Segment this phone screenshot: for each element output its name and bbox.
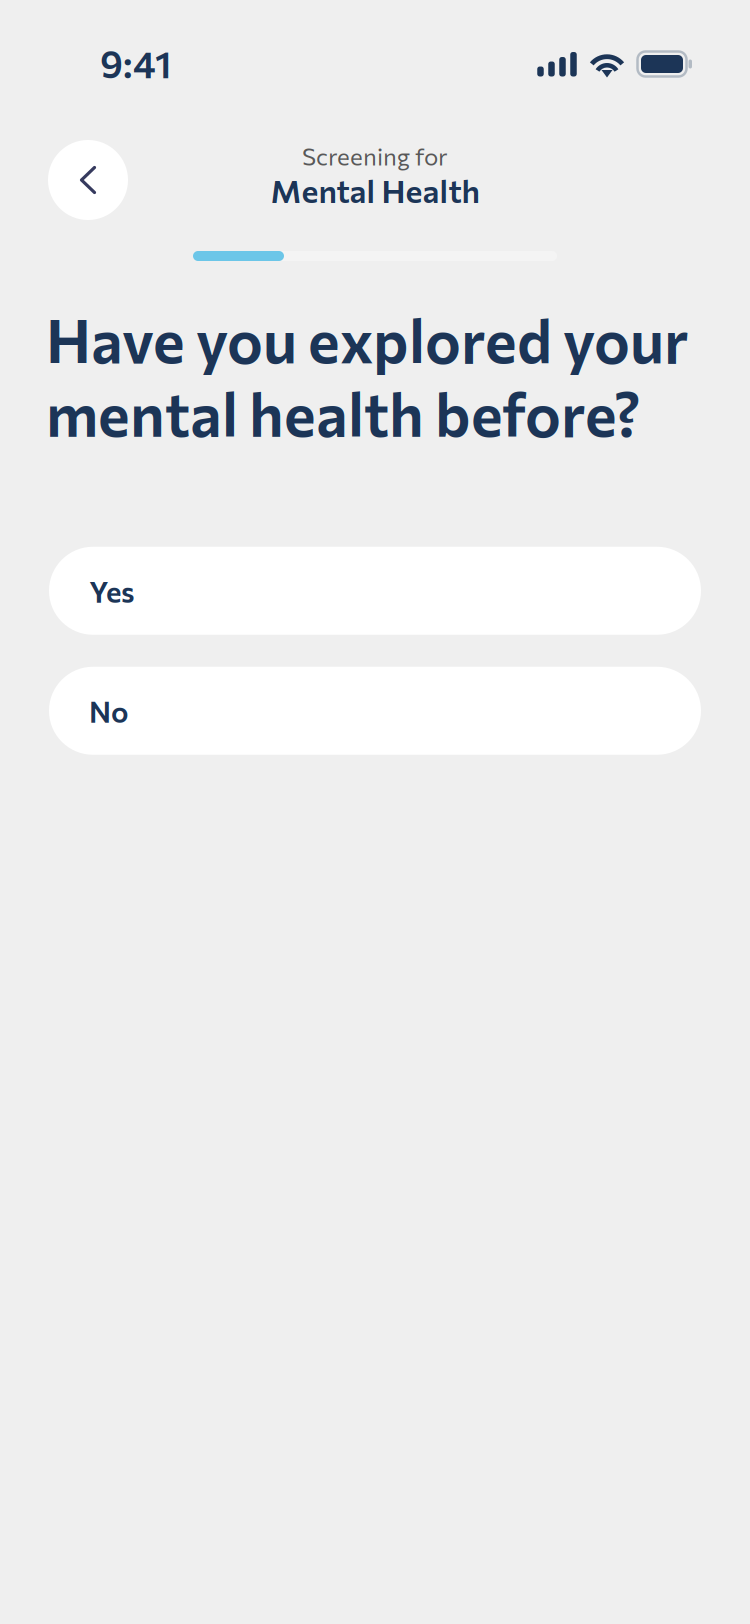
staticText: Mental Health <box>270 170 479 209</box>
staticText: Screening for <box>302 141 448 170</box>
staticText: 9:41 <box>100 40 172 86</box>
staticText: No <box>89 693 129 729</box>
button[interactable]: Yes <box>49 547 701 635</box>
staticText: Yes <box>89 573 135 609</box>
button[interactable]: Back <box>48 140 128 220</box>
button[interactable]: No <box>49 667 701 755</box>
staticText: Have you explored your mental health bef… <box>46 302 689 449</box>
